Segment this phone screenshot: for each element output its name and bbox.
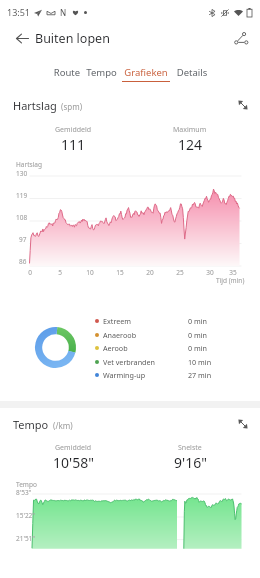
staticText: 8'53" [16, 488, 32, 497]
staticText: Gemiddeld [55, 125, 92, 135]
staticText: Vet verbranden [103, 357, 155, 367]
staticText: Tempo [13, 417, 49, 432]
staticText: Anaeroob [103, 330, 137, 340]
staticText: 86 [19, 257, 27, 266]
staticText: Snelste [178, 443, 202, 453]
staticText: 119 [16, 191, 28, 200]
staticText: 0 [10, 268, 50, 277]
staticText: 9'16" [174, 453, 207, 472]
button[interactable]: Grafieken [119, 58, 173, 84]
button[interactable]: Fullscreen heart rate chart [232, 94, 254, 116]
staticText: 30 [190, 268, 230, 277]
staticText: Hartslag [16, 160, 42, 169]
staticText: 35 [213, 268, 253, 277]
staticText: N [60, 7, 67, 18]
staticText: 108 [16, 213, 28, 222]
staticText: 111 [61, 135, 86, 154]
staticText: 15 [100, 268, 140, 277]
staticText: Extreem [103, 316, 132, 326]
staticText: 130 [16, 169, 28, 178]
staticText: Route [49, 66, 85, 79]
button[interactable]: Fullscreen pace chart [232, 413, 254, 435]
staticText: 0 min [188, 330, 207, 340]
staticText: Tijd (min) [216, 276, 245, 285]
staticText: Buiten lopen [35, 30, 110, 47]
staticText: Aeroob [103, 343, 128, 353]
staticText: 13:51 [7, 6, 31, 18]
staticText: Grafieken [119, 66, 173, 79]
staticText: 0 min [188, 343, 207, 353]
staticText: (spm) [61, 101, 83, 112]
button[interactable]: Back [10, 26, 34, 50]
staticText: Tempo [83, 66, 120, 79]
staticText: 10 min [188, 357, 212, 367]
staticText: 15'22" [16, 511, 35, 520]
staticText: 27 min [188, 370, 212, 380]
staticText: 97 [19, 235, 27, 244]
button[interactable]: Details [173, 58, 211, 84]
staticText: Details [173, 66, 211, 79]
staticText: Hartslag [13, 98, 57, 113]
staticText: Maximum [173, 125, 207, 135]
staticText: 20 [130, 268, 170, 277]
button[interactable]: Share [228, 25, 254, 51]
staticText: (/km) [53, 420, 73, 431]
button[interactable]: Route [49, 58, 85, 84]
staticText: 21'51" [16, 534, 35, 543]
staticText: Gemiddeld [55, 443, 92, 453]
staticText: Tempo [16, 480, 37, 489]
staticText: Warming-up [103, 370, 146, 380]
staticText: 10 [70, 268, 110, 277]
staticText: 5 [40, 268, 80, 277]
staticText: 0 min [188, 316, 207, 326]
button[interactable]: Tempo [83, 58, 120, 84]
staticText: 10'58" [53, 453, 94, 472]
staticText: 124 [178, 135, 203, 154]
staticText: 25 [160, 268, 200, 277]
